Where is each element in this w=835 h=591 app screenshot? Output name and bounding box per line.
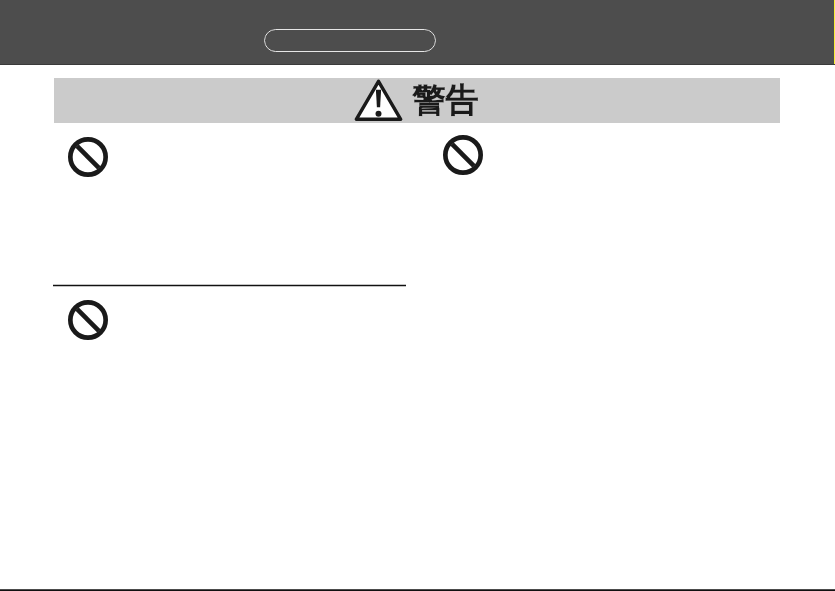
other: Prohibited [68,300,108,340]
other: Prohibited [68,137,108,177]
other: Warning [354,79,403,121]
other: Prohibited [443,135,483,175]
button[interactable]: Search field [264,29,436,52]
staticText: 警告 [412,80,478,122]
